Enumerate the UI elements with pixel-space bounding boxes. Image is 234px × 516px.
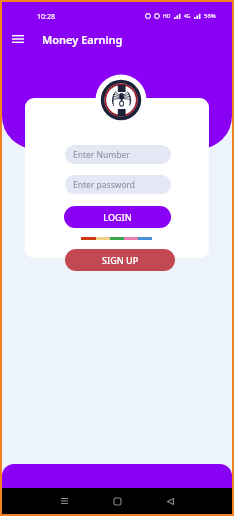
button[interactable]: Home [97, 490, 137, 512]
staticText: HD [163, 13, 171, 20]
staticText: 10:28 [37, 12, 55, 22]
button[interactable]: LOGIN [64, 206, 171, 228]
staticText: 56% [204, 12, 216, 20]
button[interactable]: Recents [44, 490, 84, 512]
staticText: Enter Number [73, 149, 130, 161]
button[interactable]: Enter Number [65, 145, 171, 164]
button[interactable]: Back [150, 490, 190, 512]
button[interactable]: Enter password [65, 175, 171, 194]
staticText: Money Earning [42, 32, 123, 47]
staticText: LOGIN [103, 211, 132, 223]
staticText: 4G [184, 13, 191, 20]
button[interactable]: Menu [6, 27, 30, 51]
staticText: SIGN UP [102, 254, 139, 266]
button[interactable]: SIGN UP [65, 249, 175, 271]
staticText: Enter password [73, 179, 136, 191]
